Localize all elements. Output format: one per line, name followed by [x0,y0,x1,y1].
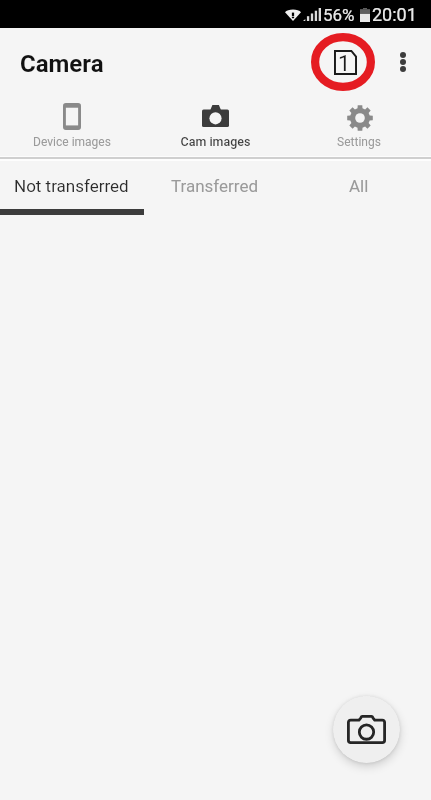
staticText: Camera [20,50,104,78]
button[interactable]: All [287,161,431,209]
staticText: Transferred [171,176,259,196]
button[interactable]: Not transferred [0,161,143,209]
staticText: Cam images [180,134,251,149]
button[interactable]: More options [381,40,425,84]
staticText: Not transferred [14,176,129,196]
button[interactable]: One file selected [311,33,375,91]
staticText: 1 [338,51,351,76]
staticText: Device images [33,135,111,149]
button[interactable]: Take photo [333,696,400,763]
staticText: 56% [323,5,355,25]
button[interactable]: Device images [0,95,143,156]
staticText: All [349,176,369,196]
button[interactable]: Settings [287,95,431,156]
button[interactable]: Cam images [143,95,287,156]
staticText: Settings [337,135,381,149]
staticText: 20:01 [372,4,417,25]
button[interactable]: Transferred [143,161,287,209]
